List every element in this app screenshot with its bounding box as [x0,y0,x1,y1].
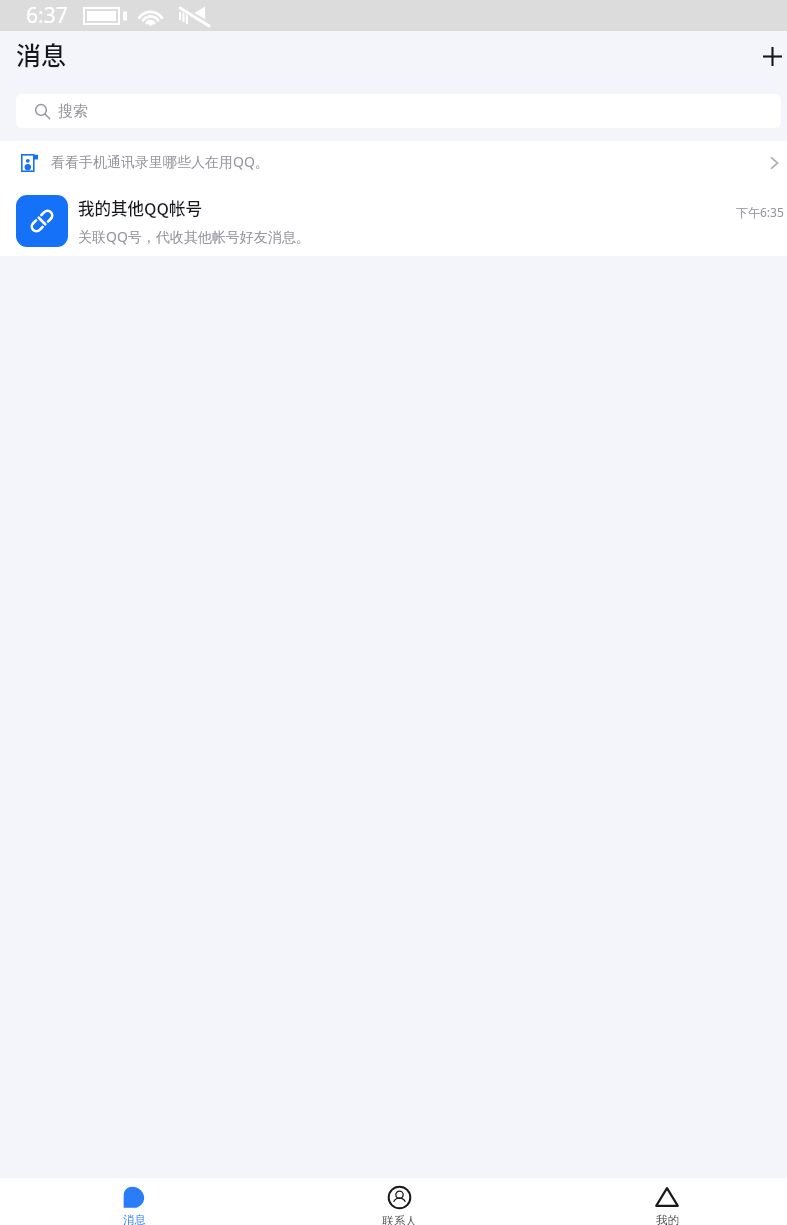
button[interactable]: Add [757,41,787,71]
staticText: 消息 [123,1213,146,1225]
button[interactable]: 看看手机通讯录里哪些人在用QQ。 [0,141,787,185]
staticText: 消息 [16,36,67,72]
button[interactable]: 搜索 [16,94,781,128]
staticText: 搜索 [58,102,88,121]
staticText: 我的其他QQ帐号 [78,196,202,220]
staticText: 关联QQ号，代收其他帐号好友消息。 [78,227,310,246]
staticText: 6:37 [26,1,68,30]
staticText: 联系人 [382,1214,417,1225]
button[interactable]: 联系人 [349,1178,449,1225]
button[interactable]: 我的 [617,1178,717,1225]
staticText: 我的 [656,1213,679,1225]
staticText: 下午6:35 [736,204,784,220]
staticText: 看看手机通讯录里哪些人在用QQ。 [51,152,269,171]
button[interactable]: 我的其他QQ帐号 [0,185,787,256]
button[interactable]: 消息 [84,1178,184,1225]
